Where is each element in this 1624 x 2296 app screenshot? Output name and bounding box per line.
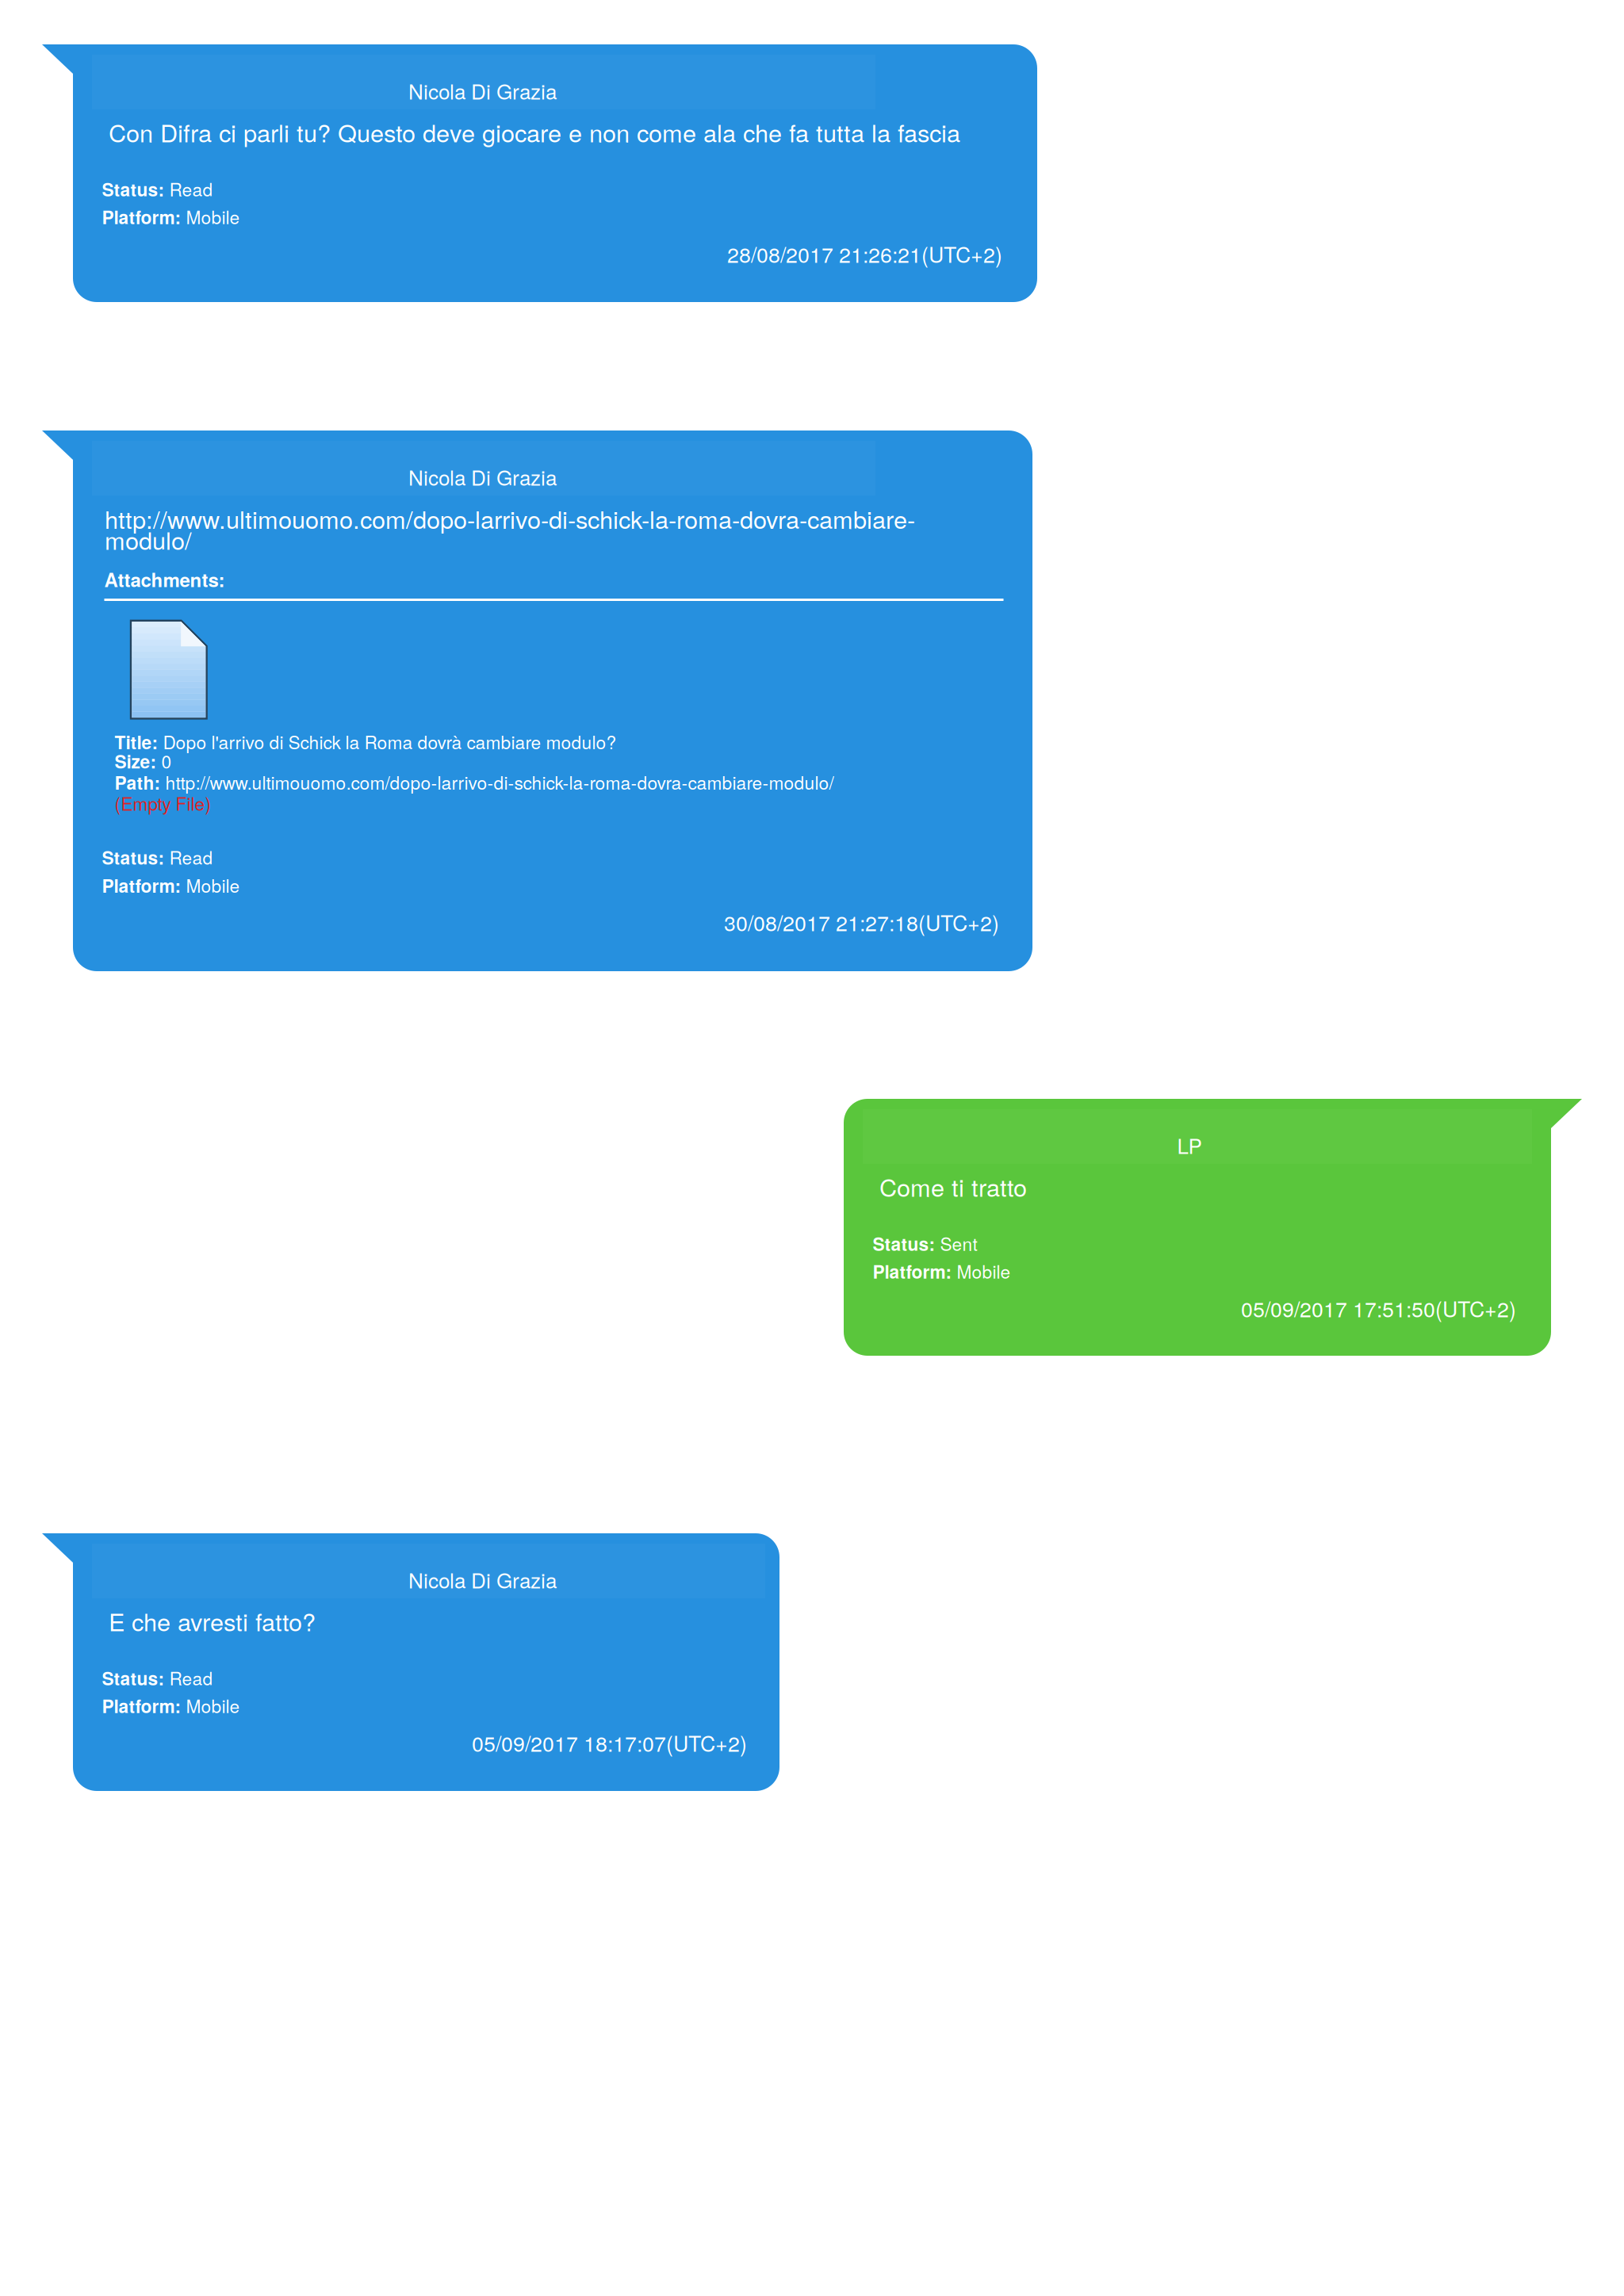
staticText: Sent [935,1230,977,1256]
staticText: 28/08/2017 21:26:21(UTC+2) [727,238,1002,269]
staticText: Nicola Di Grazia [408,462,557,491]
staticText: Mobile [181,872,240,898]
staticText: E che avresti fatto? [101,1603,316,1638]
staticText: Come ti tratto [872,1169,1027,1204]
staticText: Platform: [102,872,181,898]
staticText: Size: [115,748,157,774]
staticText: Mobile [181,204,240,229]
staticText: Status: [102,1665,164,1691]
staticText: Status: [102,176,164,202]
button[interactable]: Nicola Di Grazia [42,430,1032,971]
staticText: Read [164,176,213,202]
staticText: (Empty File) [115,790,211,816]
staticText: 30/08/2017 21:27:18(UTC+2) [724,907,999,937]
staticText: Mobile [952,1258,1011,1284]
staticText: Title: [115,729,158,755]
staticText: Platform: [102,1693,181,1719]
staticText: 0 [157,748,172,774]
button[interactable]: LP [844,1099,1582,1356]
button[interactable]: Nicola Di Grazia [42,44,1037,302]
staticText: Mobile [181,1693,240,1718]
staticText: Read [165,844,213,870]
staticText: 05/09/2017 18:17:07(UTC+2) [472,1727,747,1758]
staticText: http://www.ultimouomo.com/dopo-larrivo-d… [160,769,834,795]
staticText: 05/09/2017 17:51:50(UTC+2) [1241,1293,1516,1323]
staticText: Status: [873,1231,935,1256]
staticText: Platform: [102,204,181,230]
staticText: Con Difra ci parli tu? Questo deve gioca… [101,114,960,149]
staticText: Path: [115,769,160,795]
staticText: Nicola Di Grazia [408,1565,557,1594]
staticText: Read [164,1665,213,1690]
staticText: Platform: [873,1258,952,1284]
staticText: Status: [102,844,165,870]
staticText: Attachments: [104,566,225,593]
staticText: Dopo l'arrivo di Schick la Roma dovrà ca… [158,729,616,754]
button[interactable]: Nicola Di Grazia [42,1533,779,1791]
staticText: http://www.ultimouomo.com/dopo-larrivo-d… [105,501,915,536]
staticText: modulo/ [105,522,192,557]
staticText: LP [1177,1130,1202,1160]
staticText: Nicola Di Grazia [408,76,557,105]
